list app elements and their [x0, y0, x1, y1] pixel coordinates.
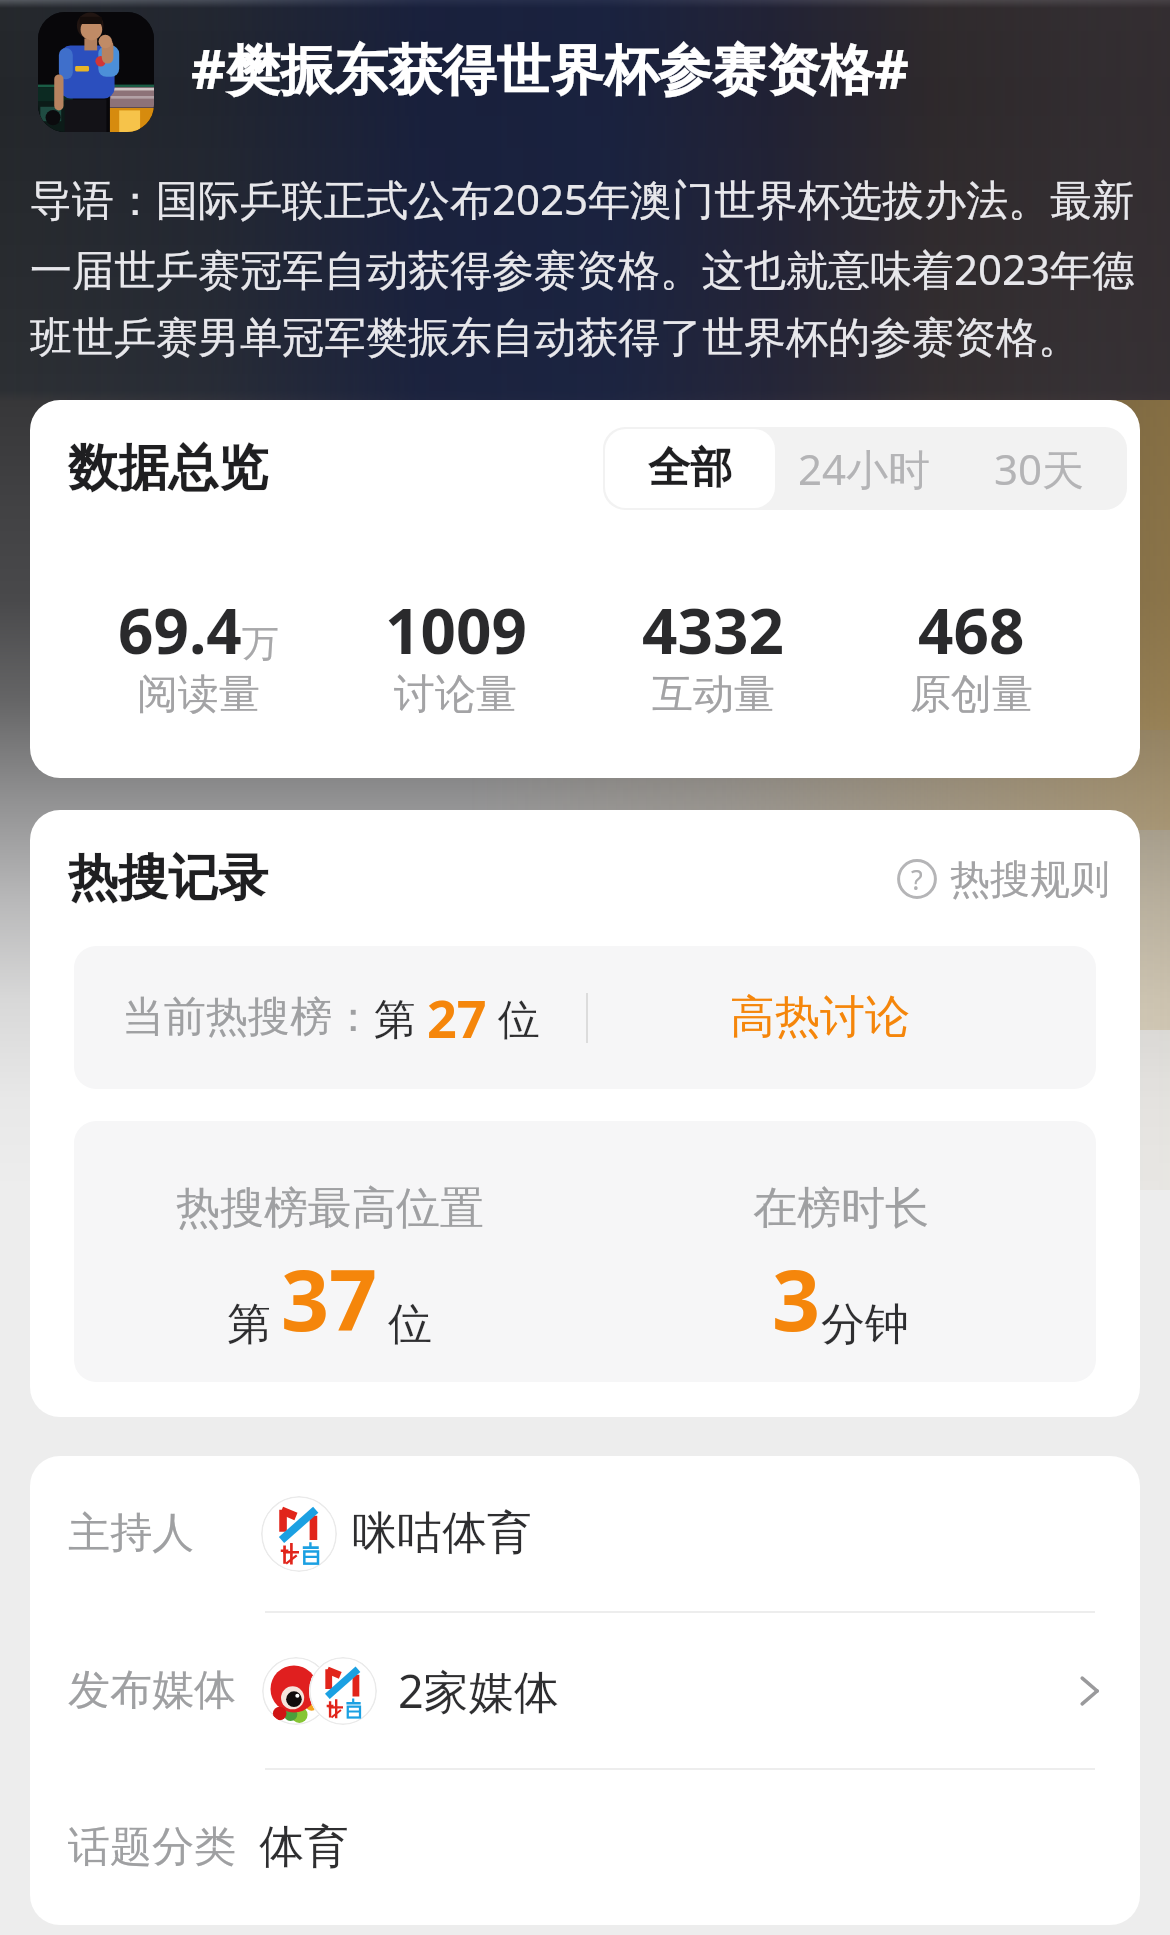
staticText: 37	[281, 1241, 378, 1355]
staticText: 咪咕体育	[352, 1505, 532, 1562]
staticText: 阅读量	[137, 669, 260, 721]
staticText: 468	[918, 588, 1025, 672]
staticText: 27	[427, 982, 487, 1053]
staticText: 讨论量	[394, 669, 517, 721]
staticText: 导语：国际乒联正式公布2025年澳门世界杯选拔办法。最新 一届世乒赛冠军自动获得…	[30, 170, 1135, 365]
button[interactable]: 主持人	[30, 1456, 1140, 1611]
button[interactable]: 24小时	[777, 440, 952, 497]
staticText: 位	[487, 989, 540, 1046]
staticText: #樊振东获得世界杯参赛资格#	[191, 31, 909, 105]
other: More media	[1072, 1674, 1106, 1708]
staticText: ?	[911, 861, 923, 898]
staticText: 全部	[648, 442, 732, 495]
staticText: 话题分类	[68, 1821, 236, 1874]
button[interactable]: 全部	[605, 429, 775, 508]
staticText: 3	[772, 1241, 821, 1355]
staticText: 高热讨论	[730, 989, 910, 1046]
button[interactable]: 30天	[952, 440, 1127, 497]
staticText: 30天	[994, 440, 1085, 497]
staticText: 热搜规则	[950, 854, 1110, 904]
staticText: 1009	[385, 588, 527, 672]
staticText: 24小时	[798, 440, 931, 497]
staticText: 热搜榜最高位置	[176, 1181, 484, 1236]
staticText: 第	[227, 1297, 271, 1352]
button[interactable]: Topic image	[38, 12, 154, 132]
staticText: 体育	[259, 1819, 349, 1876]
staticText: 主持人	[68, 1507, 194, 1560]
button[interactable]: 发布媒体	[30, 1613, 1140, 1768]
staticText: 位	[388, 1297, 432, 1352]
staticText: 发布媒体	[68, 1664, 236, 1717]
staticText: 数据总览	[68, 437, 268, 500]
staticText: 69.4	[118, 588, 242, 672]
staticText: 分钟	[821, 1297, 909, 1352]
staticText: 当前热搜榜：	[122, 991, 374, 1044]
staticText: 原创量	[910, 669, 1033, 721]
button[interactable]: 话题分类	[30, 1770, 1140, 1925]
staticText: 第	[374, 989, 427, 1046]
staticText: 热搜记录	[68, 847, 268, 910]
staticText: 2家媒体	[398, 1660, 559, 1721]
staticText: 4332	[642, 588, 784, 672]
button[interactable]: ?	[897, 854, 1110, 904]
staticText: 在榜时长	[753, 1181, 929, 1236]
staticText: 万	[242, 620, 279, 667]
staticText: 互动量	[652, 669, 775, 721]
